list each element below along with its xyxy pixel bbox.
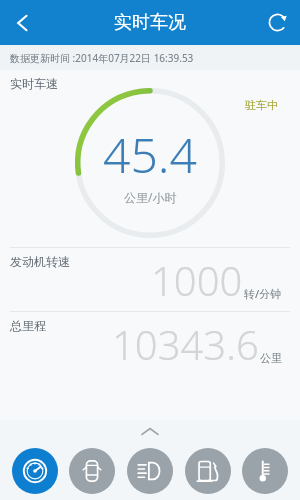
button[interactable]: Refresh: [255, 0, 300, 45]
staticText: 1000: [151, 253, 243, 307]
button[interactable]: Expand: [0, 420, 300, 442]
staticText: 总里程: [10, 318, 46, 333]
staticText: 实时车况: [114, 11, 186, 34]
button[interactable]: Speed: [12, 448, 58, 494]
button[interactable]: Back: [0, 0, 45, 45]
staticText: 转/分钟: [244, 286, 282, 301]
staticText: 10343.6: [112, 317, 259, 371]
staticText: 实时车速: [10, 76, 58, 91]
staticText: 数据更新时间 :2014年07月22日 16:39.53: [10, 51, 194, 65]
staticText: 公里/小时: [124, 189, 177, 205]
button[interactable]: Car: [69, 448, 115, 494]
staticText: 45.4: [103, 122, 197, 187]
staticText: 公里: [260, 351, 282, 365]
button[interactable]: Fuel: [185, 448, 231, 494]
staticText: 驻车中: [245, 98, 278, 112]
button[interactable]: Lights: [127, 448, 173, 494]
staticText: 发动机转速: [10, 254, 70, 269]
button[interactable]: Temperature: [242, 448, 288, 494]
